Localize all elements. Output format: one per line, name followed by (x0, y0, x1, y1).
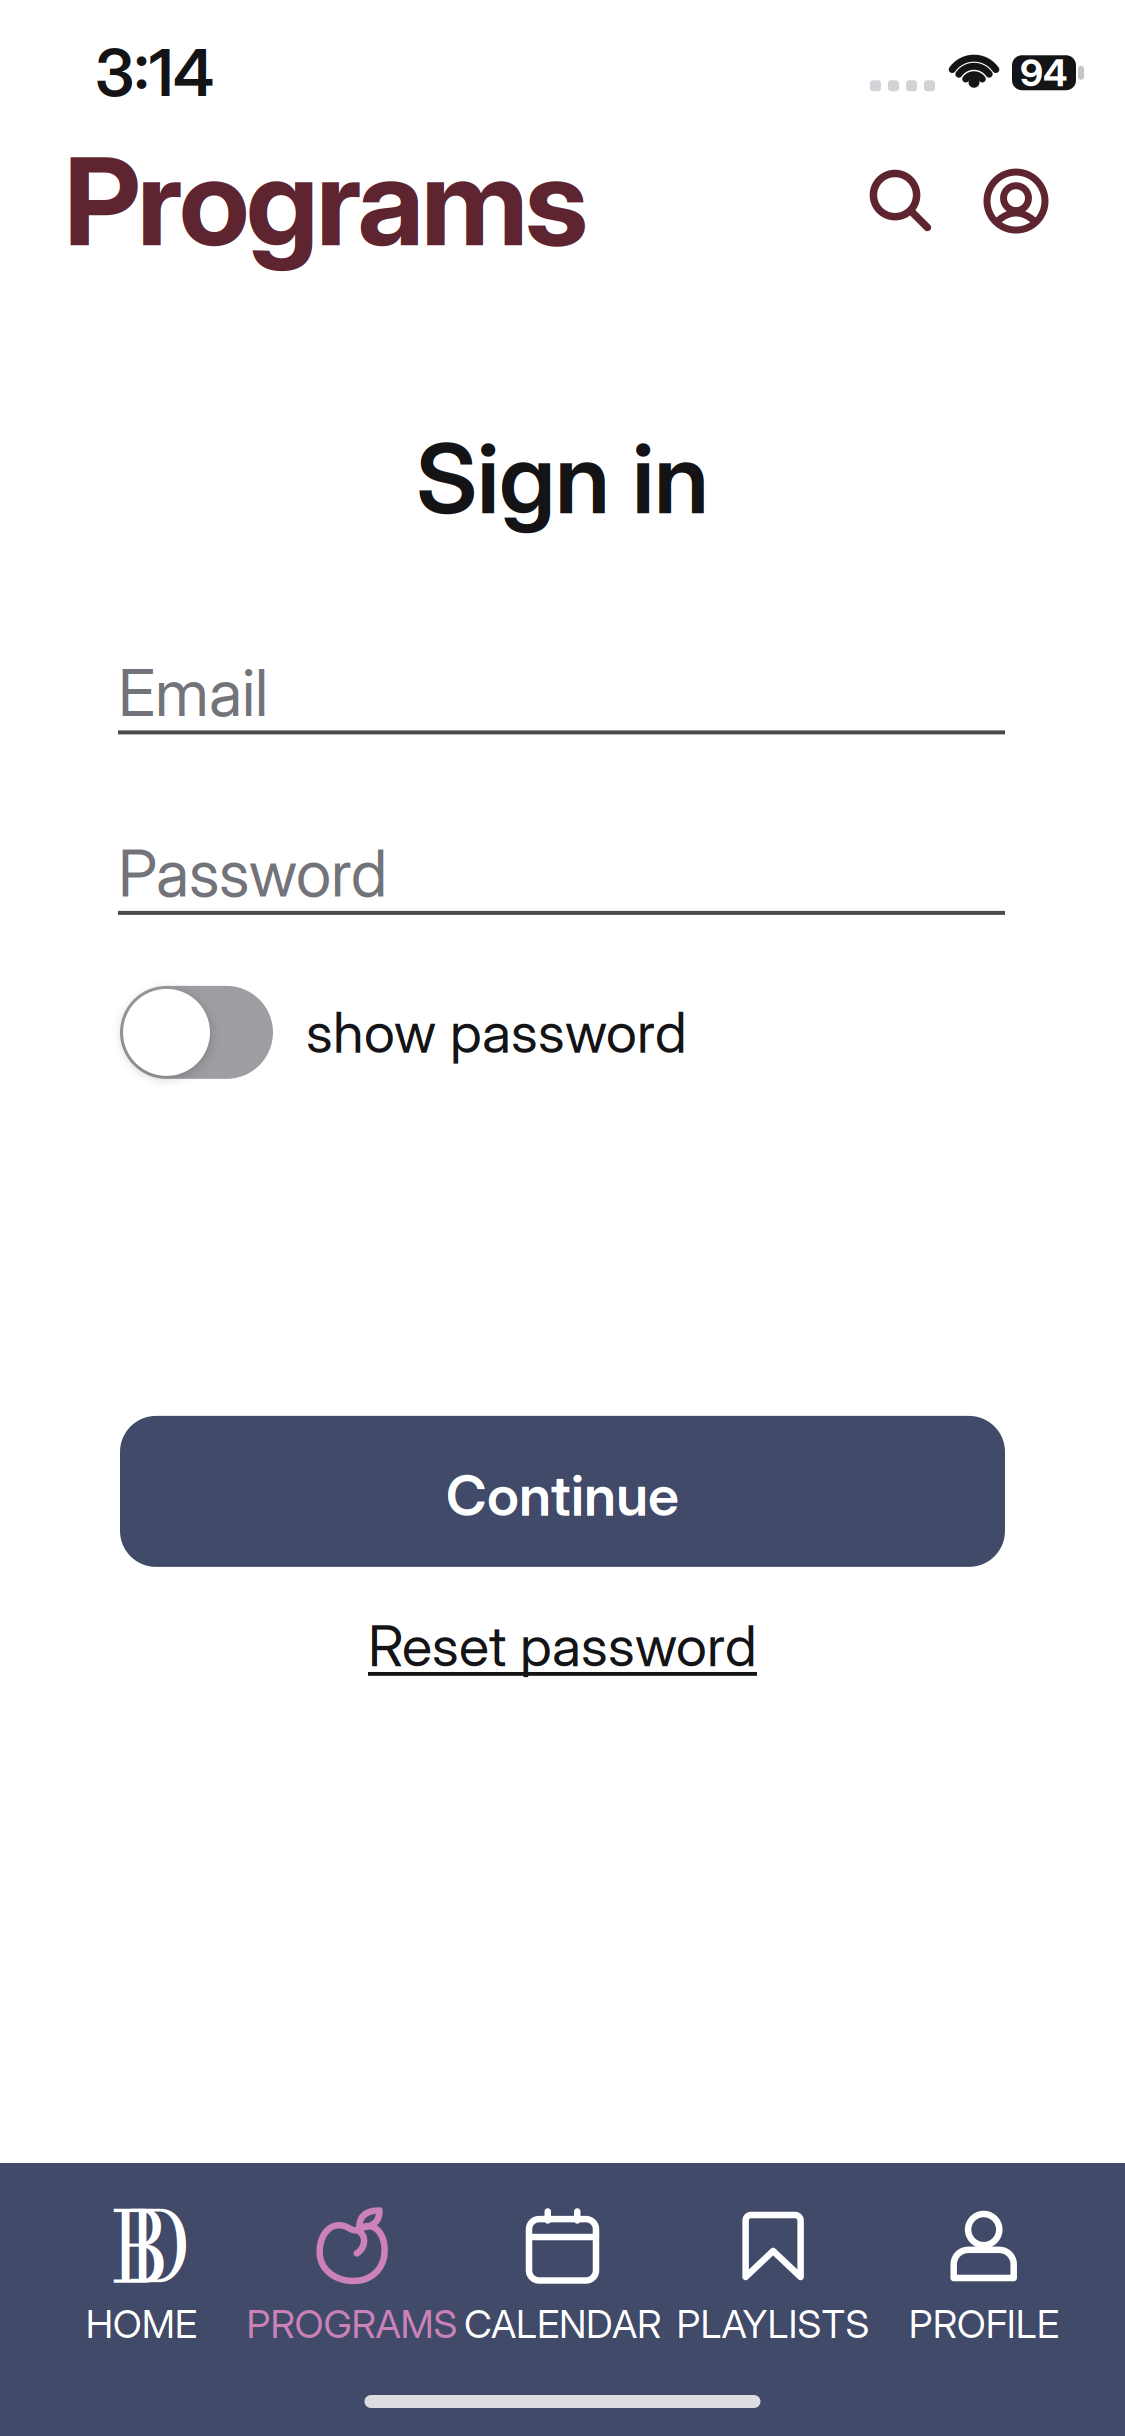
staticText: Reset password (368, 1613, 757, 1679)
staticText: Programs (64, 129, 588, 273)
button[interactable]: B (36, 2213, 247, 2347)
button[interactable] (987, 172, 1045, 230)
button[interactable]: PROFILE (878, 2213, 1089, 2347)
staticText: Continue (446, 1462, 679, 1528)
staticText: B (101, 2181, 177, 2311)
button[interactable]: CALENDAR (457, 2213, 668, 2347)
button[interactable] (871, 171, 931, 231)
staticText: 3:14 (95, 35, 214, 110)
button[interactable]: Continue (120, 1416, 1005, 1567)
staticText: PROGRAMS (247, 2301, 458, 2347)
button[interactable]: PROGRAMS (247, 2213, 457, 2347)
staticText: Email (118, 655, 268, 730)
staticText: HOME (86, 2301, 197, 2347)
staticText: PROFILE (909, 2301, 1059, 2347)
staticText: show password (306, 999, 687, 1065)
button[interactable]: Password (118, 835, 1005, 915)
staticText: Password (118, 835, 387, 911)
button[interactable]: PLAYLISTS (668, 2213, 878, 2347)
staticText: PLAYLISTS (677, 2301, 870, 2347)
button[interactable] (120, 986, 273, 1079)
button[interactable]: Email (118, 655, 1005, 734)
button[interactable]: Reset password (368, 1613, 757, 1679)
staticText: Sign in (416, 422, 709, 535)
staticText: D (123, 2181, 203, 2311)
staticText: 94 (1020, 51, 1068, 95)
staticText: CALENDAR (464, 2301, 661, 2347)
